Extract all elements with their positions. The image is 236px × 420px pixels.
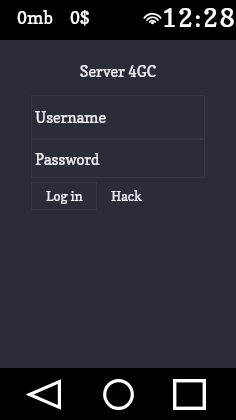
button[interactable]: Hack [97, 182, 155, 210]
staticText: Password [35, 150, 100, 168]
staticText: 12:28 [161, 2, 236, 33]
button[interactable]: Log in [31, 182, 97, 210]
button[interactable]: Back [22, 372, 66, 416]
staticText: Log in [46, 188, 83, 204]
staticText: Hack [111, 188, 142, 204]
button[interactable]: Home [96, 372, 140, 416]
staticText: Server 4GC [0, 62, 236, 80]
staticText: Username [35, 108, 107, 126]
button[interactable]: Username [31, 95, 205, 139]
staticText: 0$ [70, 7, 90, 28]
button[interactable]: Recent apps [167, 372, 211, 416]
button[interactable]: Password [31, 139, 205, 178]
staticText: 0mb [17, 7, 54, 28]
